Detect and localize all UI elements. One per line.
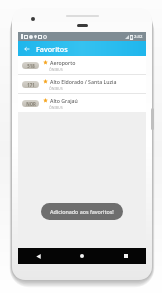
button[interactable]: Back <box>32 250 44 262</box>
staticText: Aeroporto <box>50 59 76 66</box>
staticText: Alto Grajaú <box>50 97 78 104</box>
staticText: ÔNIBUS <box>49 67 63 72</box>
staticText: Favoritos <box>36 44 68 54</box>
staticText: 2:32 <box>134 34 143 40</box>
staticText: Alto Eldorado / Santa Luzia <box>50 78 117 85</box>
button[interactable]: 171 <box>18 75 146 93</box>
button[interactable]: Home <box>76 250 88 262</box>
staticText: 518 <box>27 63 35 69</box>
button[interactable]: Adicionado aos favoritos! <box>41 203 123 220</box>
staticText: 171 <box>27 82 35 88</box>
staticText: NOR <box>26 101 36 107</box>
button[interactable]: NOR <box>18 94 146 112</box>
button[interactable]: 518 <box>18 56 146 74</box>
staticText: Adicionado aos favoritos! <box>50 208 114 215</box>
button[interactable]: Recent apps <box>120 250 132 262</box>
staticText: ÔNIBUS <box>49 105 63 110</box>
button[interactable]: Back <box>21 43 32 54</box>
staticText: ÔNIBUS <box>49 86 63 91</box>
